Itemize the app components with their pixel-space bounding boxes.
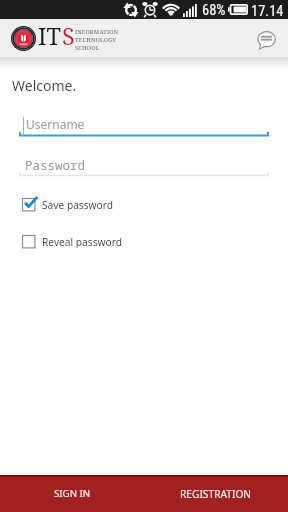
button[interactable]: Reveal password: [22, 235, 162, 248]
staticText: Welcome.: [12, 76, 77, 95]
staticText: Password: [25, 157, 86, 174]
staticText: Reveal password: [42, 235, 122, 248]
staticText: Save password: [42, 198, 114, 211]
staticText: 17.14: [251, 3, 284, 20]
button[interactable]: REGISTRATION: [144, 477, 288, 512]
staticText: IT: [38, 20, 62, 52]
button[interactable]: Save password: [22, 198, 162, 211]
staticText: Username: [26, 116, 85, 132]
button[interactable]: Username: [19, 114, 269, 138]
button[interactable]: Password: [19, 155, 269, 179]
button[interactable]: SIGN IN: [0, 477, 144, 512]
staticText: SIGN IN: [54, 487, 91, 500]
staticText: INFORMATION TECHNOLOGY SCHOOL: [75, 28, 119, 52]
staticText: REGISTRATION: [180, 487, 252, 501]
button[interactable]: Messages: [250, 24, 284, 58]
staticText: S: [62, 20, 75, 52]
staticText: 68%: [202, 2, 226, 19]
